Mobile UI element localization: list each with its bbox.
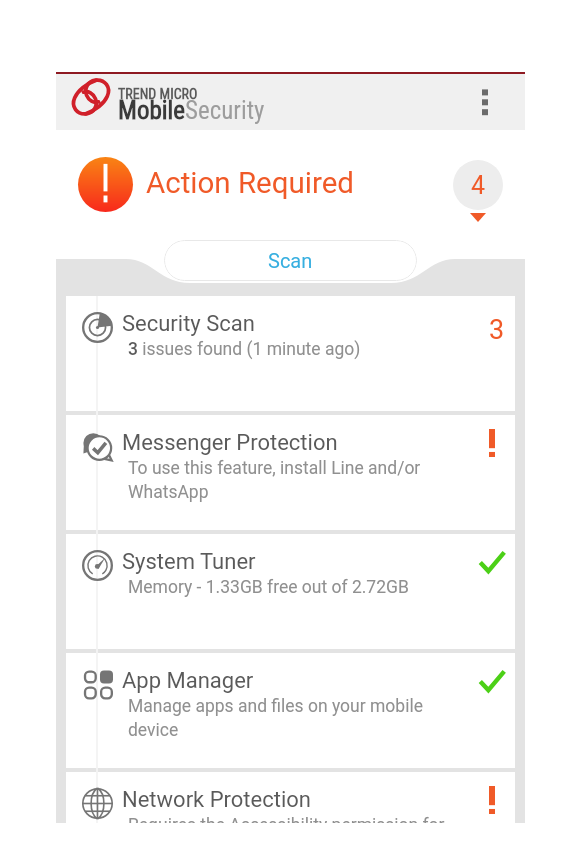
staticText: Memory - 1.33GB free out of 2.72GB	[128, 577, 409, 598]
staticText: App Manager	[122, 668, 254, 694]
staticText: Manage apps and files on your mobile dev…	[128, 696, 468, 740]
staticText: Network Protection	[122, 787, 311, 813]
staticText: To use this feature, install Line and/or…	[128, 458, 468, 502]
button[interactable]: Messenger Protection	[66, 415, 515, 530]
staticText: Action Required	[146, 166, 354, 201]
button[interactable]: System Tuner	[66, 534, 515, 649]
staticText: TREND MICRO	[118, 86, 198, 102]
staticText: Requires the Accessibility permission fo…	[128, 815, 445, 823]
staticText: 3 issues found (1 minute ago)	[128, 339, 361, 360]
staticText: Messenger Protection	[122, 430, 338, 456]
staticText: 3	[489, 314, 505, 346]
button[interactable]: Security Scan	[66, 296, 515, 411]
button[interactable]: Network Protection	[66, 772, 515, 823]
button[interactable]: 4 issues	[453, 160, 503, 210]
staticText: Security Scan	[122, 311, 255, 337]
staticText: System Tuner	[122, 549, 256, 575]
button[interactable]: App Manager	[66, 653, 515, 768]
button[interactable]: Scan	[164, 240, 417, 281]
button[interactable]: More options	[465, 82, 505, 122]
staticText: 4	[471, 171, 486, 200]
staticText: Scan	[268, 249, 313, 272]
staticText: MobileSecurity	[118, 96, 265, 125]
